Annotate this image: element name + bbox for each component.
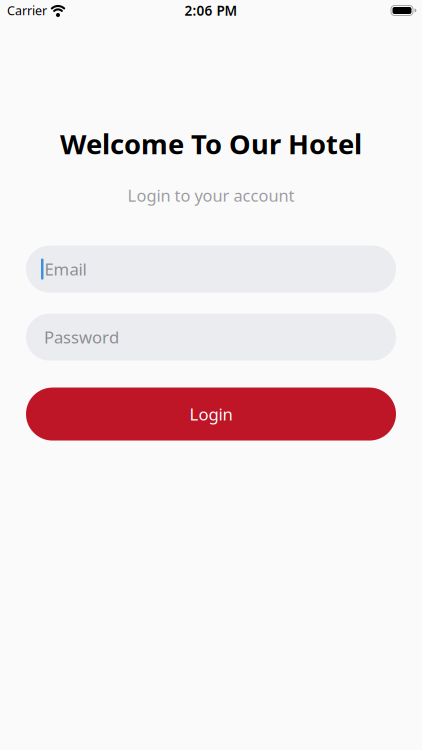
button[interactable]: Login: [26, 388, 396, 441]
button[interactable]: Email: [26, 246, 396, 293]
button[interactable]: Password: [26, 314, 396, 361]
staticText: 2:06 PM: [184, 1, 237, 20]
staticText: Password: [44, 326, 119, 348]
staticText: Login: [189, 403, 232, 425]
staticText: Welcome To Our Hotel: [60, 125, 362, 162]
staticText: Carrier: [7, 2, 47, 19]
staticText: Login to your account: [127, 184, 294, 206]
staticText: Email: [44, 258, 86, 280]
